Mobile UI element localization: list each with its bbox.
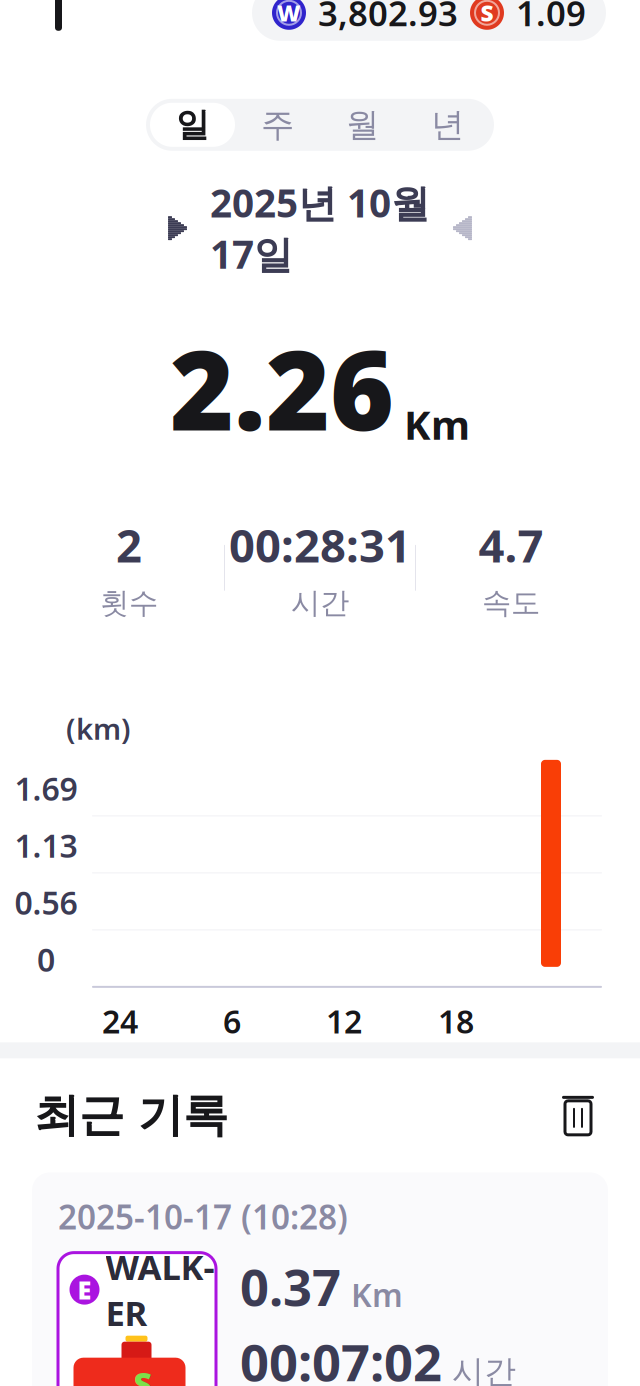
- staticText: 6: [223, 1000, 241, 1042]
- button[interactable]: 일: [150, 103, 235, 147]
- button[interactable]: 주: [235, 103, 320, 147]
- staticText: 2025년 10월 17일: [210, 177, 430, 279]
- staticText: 시간: [452, 1352, 516, 1386]
- staticText: 12: [326, 1000, 362, 1042]
- staticText: 2: [116, 515, 142, 575]
- staticText: 1.13: [14, 824, 77, 867]
- staticText: 주: [261, 104, 294, 145]
- staticText: 1.69: [14, 767, 77, 810]
- button[interactable]: 년: [405, 103, 490, 147]
- staticText: (km): [66, 709, 131, 748]
- staticText: 3,802.93: [318, 0, 458, 36]
- button[interactable]: 2025-10-17 (10:28): [32, 1172, 608, 1386]
- staticText: WALKER: [105, 1244, 214, 1336]
- staticText: 2025-10-17 (10:28): [58, 1194, 348, 1239]
- staticText: 24: [102, 1000, 138, 1042]
- staticText: 최근 기록: [34, 1087, 228, 1143]
- button[interactable]: W: [252, 0, 606, 41]
- staticText: 00:28:31: [229, 515, 411, 575]
- staticText: S: [133, 1362, 151, 1386]
- staticText: 속도: [482, 585, 540, 621]
- staticText: 0.37: [240, 1253, 341, 1320]
- button[interactable]: Previous day: [151, 206, 205, 250]
- staticText: 0: [37, 938, 55, 981]
- staticText: 0.56: [14, 881, 77, 924]
- staticText: 18: [438, 1000, 474, 1042]
- staticText: 4.7: [478, 515, 543, 575]
- staticText: 월: [346, 104, 379, 145]
- staticText: 년: [431, 104, 464, 145]
- staticText: 1.09: [516, 0, 586, 36]
- staticText: 시간: [291, 585, 349, 621]
- button[interactable]: 월: [320, 103, 405, 147]
- staticText: W: [277, 0, 301, 28]
- staticText: S: [480, 0, 493, 28]
- button[interactable]: Delete records: [550, 1087, 606, 1143]
- staticText: 2.26: [170, 315, 394, 461]
- staticText: Km: [351, 1273, 403, 1316]
- button[interactable]: Next day: [435, 206, 489, 250]
- staticText: 00:07:02: [240, 1328, 442, 1386]
- staticText: 일: [176, 104, 209, 145]
- staticText: E: [77, 1273, 91, 1306]
- staticText: 횟수: [100, 585, 158, 621]
- button[interactable]: Back: [34, 0, 90, 41]
- staticText: Km: [404, 398, 470, 451]
